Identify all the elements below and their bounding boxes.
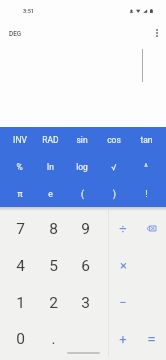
- button[interactable]: ÷: [109, 210, 137, 247]
- staticText: ^: [144, 162, 148, 172]
- button[interactable]: =: [137, 321, 166, 357]
- button[interactable]: .: [37, 321, 69, 357]
- button[interactable]: 1: [4, 284, 37, 321]
- staticText: cos: [107, 135, 121, 145]
- button[interactable]: e: [35, 180, 66, 207]
- staticText: ): [113, 189, 116, 199]
- staticText: (: [81, 189, 84, 199]
- button[interactable]: 3: [69, 284, 101, 321]
- button[interactable]: −: [109, 284, 137, 321]
- staticText: log: [76, 162, 88, 172]
- staticText: 6: [81, 257, 90, 275]
- staticText: tan: [140, 135, 153, 145]
- staticText: ln: [47, 162, 54, 172]
- staticText: π: [17, 189, 23, 199]
- button[interactable]: ): [98, 180, 130, 207]
- button[interactable]: 8: [37, 210, 69, 247]
- button[interactable]: tan: [130, 127, 162, 153]
- button[interactable]: 6: [69, 247, 101, 284]
- staticText: 2: [49, 294, 58, 312]
- staticText: 5: [49, 257, 58, 275]
- staticText: 3: [81, 294, 90, 312]
- staticText: 3:51: [23, 8, 35, 15]
- button[interactable]: 0: [4, 321, 37, 357]
- button[interactable]: √: [98, 153, 130, 180]
- staticText: 9: [81, 220, 90, 238]
- button[interactable]: log: [66, 153, 98, 180]
- button[interactable]: ^: [130, 153, 162, 180]
- staticText: ÷: [119, 221, 127, 236]
- staticText: √: [111, 162, 117, 172]
- button[interactable]: More options: [147, 23, 166, 43]
- staticText: 8: [49, 220, 58, 238]
- staticText: 0: [16, 330, 25, 348]
- staticText: +: [119, 332, 127, 347]
- staticText: e: [48, 189, 53, 199]
- button[interactable]: cos: [98, 127, 130, 153]
- button[interactable]: ln: [35, 153, 66, 180]
- button[interactable]: 2: [37, 284, 69, 321]
- button[interactable]: [69, 321, 101, 357]
- button[interactable]: (: [66, 180, 98, 207]
- button[interactable]: sin: [66, 127, 98, 153]
- staticText: %: [16, 162, 23, 172]
- button[interactable]: +: [109, 321, 137, 357]
- button[interactable]: ×: [109, 247, 137, 284]
- button[interactable]: 9: [69, 210, 101, 247]
- staticText: !: [145, 189, 148, 199]
- button[interactable]: Delete: [137, 210, 166, 247]
- button[interactable]: %: [4, 153, 35, 180]
- staticText: .: [51, 330, 56, 348]
- button[interactable]: INV: [4, 127, 35, 153]
- staticText: =: [147, 330, 156, 348]
- staticText: 4: [16, 257, 25, 275]
- staticText: 1: [16, 294, 25, 312]
- staticText: 7: [16, 220, 25, 238]
- button[interactable]: !: [130, 180, 162, 207]
- staticText: sin: [76, 135, 88, 145]
- button[interactable]: 7: [4, 210, 37, 247]
- button[interactable]: π: [4, 180, 35, 207]
- staticText: −: [119, 295, 127, 310]
- button[interactable]: RAD: [35, 127, 66, 153]
- staticText: DEG: [9, 30, 22, 38]
- button[interactable]: 4: [4, 247, 37, 284]
- staticText: INV: [13, 135, 27, 145]
- staticText: ×: [120, 258, 127, 273]
- button[interactable]: 5: [37, 247, 69, 284]
- staticText: RAD: [42, 135, 59, 145]
